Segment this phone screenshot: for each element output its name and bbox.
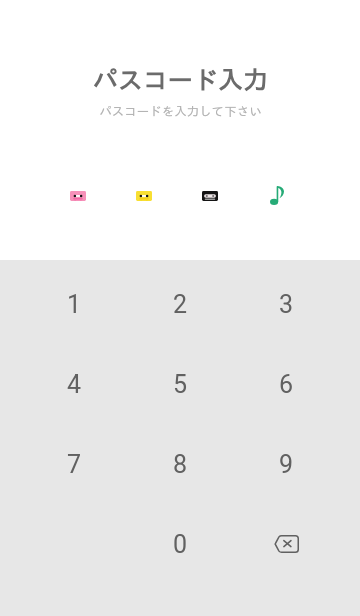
button[interactable]: Passcode 2 [127,179,161,213]
button[interactable]: 9 [233,424,339,504]
button[interactable]: Passcode 3 [193,179,227,213]
staticText: 1 [67,290,82,319]
staticText: パスコードを入力して下さい [99,105,262,118]
button[interactable]: 8 [127,424,233,504]
button[interactable]: 4 [22,344,127,424]
staticText: 4 [67,370,82,399]
staticText: パスコード入力 [93,67,268,92]
staticText: 7 [67,450,82,479]
staticText: 0 [173,530,188,559]
button[interactable]: 5 [127,344,233,424]
staticText: 5 [173,370,188,399]
button[interactable]: 6 [233,344,339,424]
staticText: 3 [279,290,294,319]
button[interactable]: 0 [127,504,233,584]
staticText: 6 [279,370,294,399]
staticText: 8 [173,450,188,479]
button[interactable]: 7 [22,424,127,504]
button[interactable]: 3 [233,264,339,344]
button[interactable]: Passcode 1 [61,179,95,213]
button[interactable]: 1 [22,264,127,344]
button[interactable]: Passcode 4 [260,178,294,212]
staticText: 2 [173,290,188,319]
button[interactable]: 2 [127,264,233,344]
staticText: 9 [279,450,294,479]
button[interactable]: Backspace [233,504,339,584]
